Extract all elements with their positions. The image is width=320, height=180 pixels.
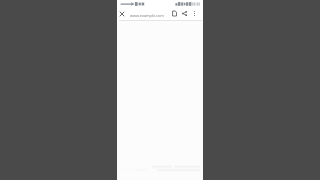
staticText: www.example.com (130, 13, 164, 18)
button[interactable]: Share (180, 9, 189, 18)
button[interactable]: More options (190, 9, 199, 18)
button[interactable]: Close (117, 9, 126, 18)
button[interactable]: Page info (170, 9, 179, 18)
